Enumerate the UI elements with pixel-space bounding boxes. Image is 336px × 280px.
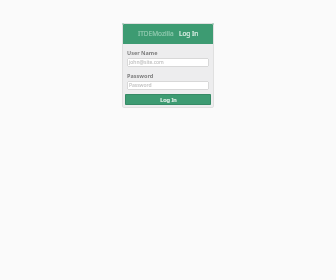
button[interactable]: Password [127,81,209,90]
staticText: Password [129,82,152,89]
staticText: Password [127,72,154,79]
staticText: ITDEMozilla [138,29,174,38]
button[interactable]: Log In [125,94,211,105]
staticText: Log In [160,96,177,103]
staticText: User Name [127,49,158,56]
button[interactable]: john@site.com [127,58,209,67]
staticText: john@site.com [129,59,164,66]
staticText: Log In [179,29,199,38]
